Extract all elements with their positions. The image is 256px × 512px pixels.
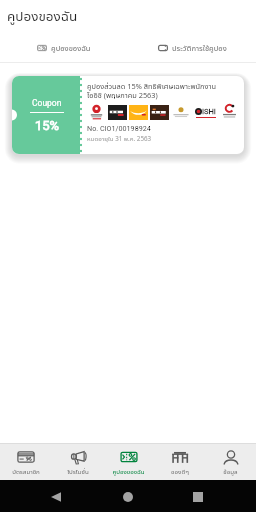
staticText: Coupon <box>32 98 62 108</box>
staticText: โปรโมชั่น <box>67 467 89 475</box>
staticText: บัตรสมาชิก <box>12 467 40 475</box>
button[interactable]: ข้อมูล <box>205 444 256 480</box>
button[interactable]: บัตรสมาชิก <box>0 444 52 480</box>
button[interactable]: ของดีๆ <box>154 444 205 480</box>
button[interactable]: Back <box>46 487 66 507</box>
button[interactable]: คูปองของฉัน <box>0 36 128 60</box>
button[interactable]: Recents <box>188 487 208 507</box>
staticText: ISHI <box>202 107 216 116</box>
staticText: คูปองของฉัน <box>51 43 91 53</box>
staticText: 15% <box>35 118 60 133</box>
staticText: ข้อมูล <box>223 467 238 475</box>
staticText: หมดอายุใน 31 พ.ค. 2563 <box>87 134 152 142</box>
staticText: ของดีๆ <box>171 467 189 475</box>
staticText: คูปองของฉัน <box>112 467 145 475</box>
staticText: คูปองส่วนลด 15% สิทธิพิเศษเฉพาะพนักงาน โ… <box>87 81 216 101</box>
button[interactable]: Coupon <box>12 76 244 154</box>
button[interactable]: คูปองของฉัน <box>103 444 154 480</box>
staticText: ประวัติการใช้คูปอง <box>172 43 227 53</box>
button[interactable]: โปรโมชั่น <box>52 444 103 480</box>
staticText: No. CIO1/00198924 <box>87 124 151 132</box>
button[interactable]: Home <box>118 487 138 507</box>
button[interactable]: ประวัติการใช้คูปอง <box>128 36 256 60</box>
staticText: คูปองของฉัน <box>7 7 78 25</box>
